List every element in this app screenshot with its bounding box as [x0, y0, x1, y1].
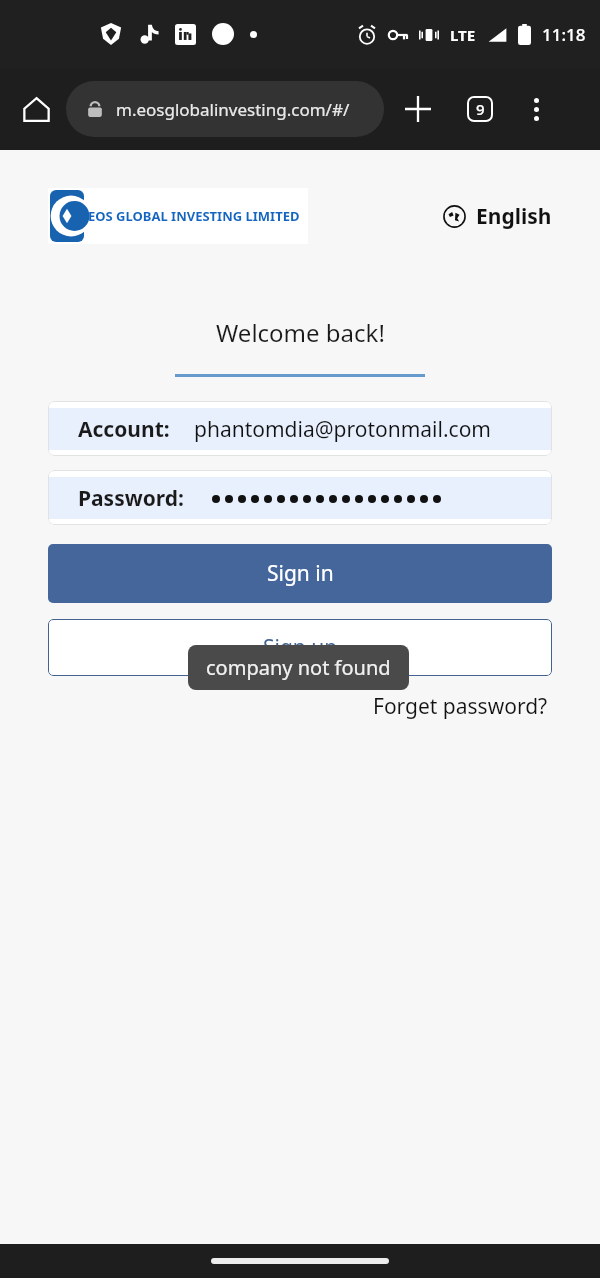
staticText: Sign up — [263, 633, 338, 662]
button[interactable]: EOS GLOBAL INVESTING LIMITED — [48, 188, 308, 244]
staticText: Sign in — [267, 559, 334, 588]
button[interactable]: m.eosglobalinvesting.com/#/ — [66, 81, 384, 137]
staticText: English — [476, 202, 552, 231]
staticText: Welcome back! — [216, 316, 385, 349]
staticText: Account: — [78, 415, 170, 444]
button[interactable]: Sign up — [48, 619, 552, 676]
button[interactable]: English — [439, 198, 556, 235]
button[interactable]: New tab — [398, 89, 438, 129]
staticText: EOS GLOBAL INVESTING LIMITED — [88, 207, 300, 225]
button[interactable]: Home — [14, 87, 58, 131]
staticText: m.eosglobalinvesting.com/#/ — [116, 98, 350, 121]
staticText: phantomdia@protonmail.com — [194, 415, 492, 444]
staticText: 9 — [476, 99, 485, 119]
staticText: 11:18 — [542, 23, 586, 46]
button[interactable]: Forget password? — [369, 690, 552, 723]
staticText: LTE — [450, 25, 476, 45]
button[interactable]: Sign in — [48, 544, 552, 603]
button[interactable]: More options — [516, 89, 556, 129]
staticText: Forget password? — [373, 692, 548, 721]
button[interactable]: Account: — [48, 401, 552, 456]
staticText: Password: — [78, 484, 184, 513]
button[interactable]: Password: — [48, 470, 552, 525]
button[interactable]: Welcome back! — [198, 312, 403, 353]
button[interactable]: Tabs — [460, 89, 500, 129]
staticText: company not found — [206, 654, 391, 681]
